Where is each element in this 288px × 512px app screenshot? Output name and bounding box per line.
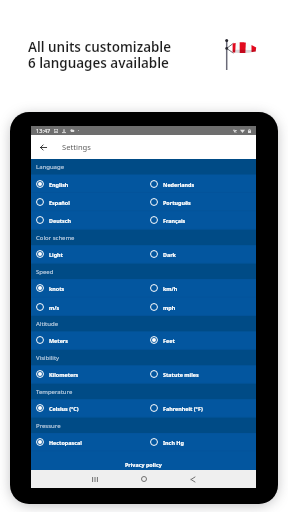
button[interactable]: Privacy policy xyxy=(31,459,256,470)
button[interactable]: Recent apps xyxy=(85,470,105,488)
staticText: Português xyxy=(163,199,191,206)
button[interactable]: Deutsch xyxy=(31,211,144,229)
staticText: All units customizable xyxy=(28,38,171,56)
button[interactable]: Feet xyxy=(145,331,258,349)
button[interactable]: Celsius (°C) xyxy=(31,399,144,417)
button[interactable]: Kilometers xyxy=(31,365,144,383)
button[interactable]: Light xyxy=(31,245,144,263)
staticText: Settings xyxy=(62,142,91,152)
button[interactable]: Fahrenheit (°F) xyxy=(145,399,258,417)
staticText: Meters xyxy=(49,337,68,344)
staticText: Kilometers xyxy=(49,371,79,378)
staticText: Fahrenheit (°F) xyxy=(163,405,203,412)
staticText: Statute miles xyxy=(163,371,199,378)
staticText: Deutsch xyxy=(49,217,71,224)
staticText: English xyxy=(49,181,69,188)
staticText: Privacy policy xyxy=(125,461,162,468)
button[interactable]: Home xyxy=(134,470,154,488)
staticText: Temperature xyxy=(36,388,73,396)
staticText: m/s xyxy=(49,304,60,311)
button[interactable]: Dark xyxy=(145,245,258,263)
staticText: mph xyxy=(163,304,176,311)
staticText: Light xyxy=(49,251,63,258)
staticText: Pressure xyxy=(36,422,61,430)
staticText: Français xyxy=(163,217,186,224)
staticText: Español xyxy=(49,199,70,206)
staticText: km/h xyxy=(163,285,178,292)
button[interactable]: Nederlands xyxy=(145,175,258,193)
staticText: Inch Hg xyxy=(163,439,184,446)
button[interactable]: knots xyxy=(31,279,144,297)
staticText: knots xyxy=(49,285,65,292)
staticText: Speed xyxy=(36,268,54,276)
button[interactable]: Meters xyxy=(31,331,144,349)
staticText: Nederlands xyxy=(163,181,195,188)
staticText: Color scheme xyxy=(36,234,75,242)
staticText: Visibility xyxy=(36,354,60,362)
button[interactable]: Inch Hg xyxy=(145,433,258,451)
button[interactable]: Français xyxy=(145,211,258,229)
button[interactable]: Español xyxy=(31,193,144,211)
staticText: 6 languages available xyxy=(28,54,169,72)
staticText: Language xyxy=(36,163,65,171)
button[interactable]: m/s xyxy=(31,298,144,316)
button[interactable]: English xyxy=(31,175,144,193)
staticText: Dark xyxy=(163,251,176,258)
button[interactable]: Português xyxy=(145,193,258,211)
staticText: 13:47 xyxy=(36,127,51,135)
staticText: Celsius (°C) xyxy=(49,405,79,412)
staticText: Altitude xyxy=(36,320,59,328)
button[interactable]: mph xyxy=(145,298,258,316)
button[interactable]: Hectopascal xyxy=(31,433,144,451)
staticText: Feet xyxy=(163,337,175,344)
staticText: Hectopascal xyxy=(49,439,82,446)
button[interactable]: Back xyxy=(183,470,203,488)
button[interactable]: Back xyxy=(33,137,53,157)
button[interactable]: Statute miles xyxy=(145,365,258,383)
button[interactable]: km/h xyxy=(145,279,258,297)
